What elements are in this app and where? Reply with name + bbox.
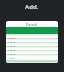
staticText: Name: [8, 36, 16, 39]
staticText: Name: [8, 52, 16, 55]
staticText: Name: [8, 40, 16, 43]
staticText: Details: [26, 22, 38, 27]
staticText: Add.: [25, 3, 39, 11]
staticText: Name: [8, 44, 16, 47]
button[interactable]: Details: [6, 21, 58, 63]
staticText: Name: [8, 48, 16, 51]
staticText: Name: [8, 56, 16, 59]
